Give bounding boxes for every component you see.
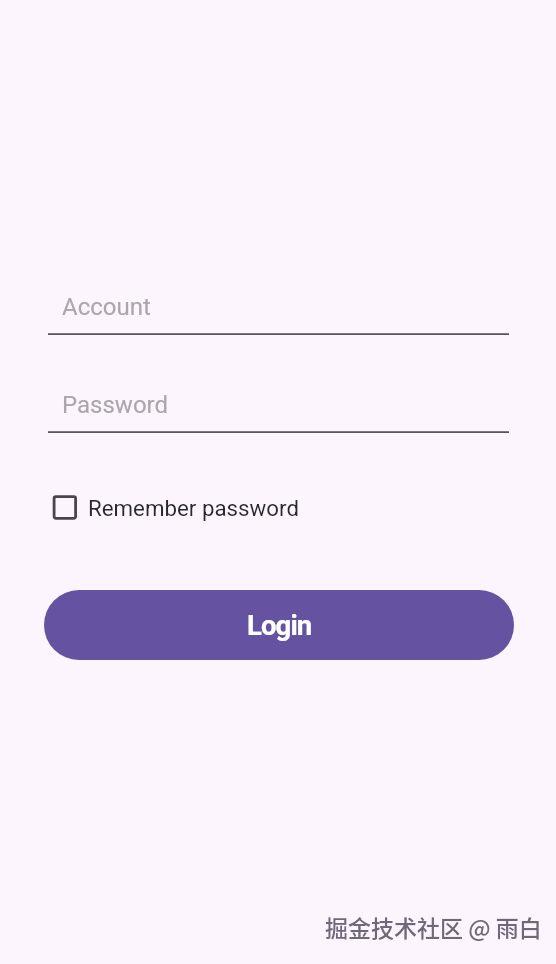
button[interactable]: Password bbox=[0, 377, 556, 433]
button[interactable]: Remember password checkbox bbox=[52, 492, 294, 523]
button[interactable]: Login bbox=[44, 590, 514, 660]
staticText: Login bbox=[247, 609, 312, 641]
staticText: Password bbox=[62, 391, 169, 419]
staticText: 掘金技术社区 @ 雨白 bbox=[325, 910, 542, 943]
staticText: Account bbox=[62, 293, 151, 321]
staticText: Remember password bbox=[88, 495, 299, 521]
other: Remember password checkbox bbox=[52, 492, 83, 523]
button[interactable]: Account bbox=[0, 279, 556, 335]
